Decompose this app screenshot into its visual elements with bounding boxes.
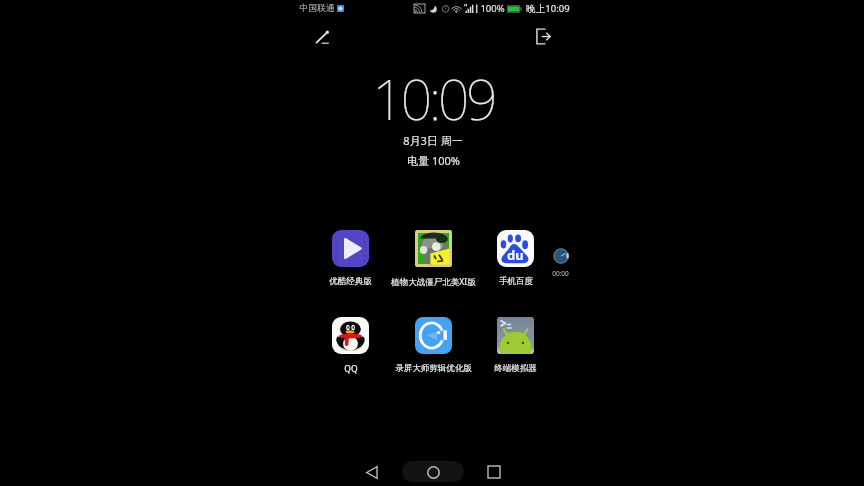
staticText: 中国联通 (299, 3, 335, 14)
button[interactable]: Clock widget 00:00 (545, 248, 576, 278)
staticText: 10:09 (372, 61, 495, 136)
staticText: 8月3日 周一 (403, 133, 463, 148)
button[interactable]: 植物大战僵尸北美XI版 (383, 227, 483, 291)
button[interactable]: Recents (472, 458, 516, 486)
button[interactable]: QQ (300, 314, 400, 378)
staticText: 录屏大师剪辑优化版 (395, 363, 472, 374)
staticText: 晚上10:09 (526, 2, 570, 15)
staticText: QQ (344, 363, 358, 375)
staticText: 00:00 (552, 269, 569, 278)
staticText: du (507, 246, 524, 264)
button[interactable]: du (465, 227, 565, 291)
staticText: 终端模拟器 (494, 363, 537, 374)
button[interactable]: 优酷经典版 (300, 227, 400, 291)
staticText: 植物大战僵尸北美XI版 (391, 276, 476, 288)
staticText: 优酷经典版 (329, 276, 372, 287)
button[interactable]: Back (350, 458, 394, 486)
staticText: 电量 100% (407, 153, 460, 168)
button[interactable]: 录屏大师剪辑优化版 (383, 314, 483, 378)
button[interactable]: Exit (530, 23, 556, 49)
staticText: 手机百度 (499, 276, 533, 287)
staticText: 100% (480, 2, 505, 15)
button[interactable]: Edit (309, 24, 335, 50)
button[interactable]: 终端模拟器 (465, 314, 565, 378)
button[interactable]: Home (411, 458, 455, 486)
